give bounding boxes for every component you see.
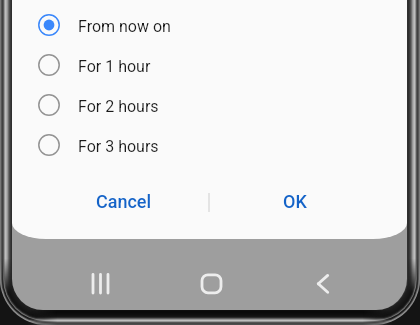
staticText: For 3 hours <box>78 137 159 156</box>
button[interactable]: Cancel <box>38 179 209 223</box>
button[interactable]: Home <box>188 260 236 308</box>
staticText: For 2 hours <box>78 97 159 116</box>
button[interactable]: For 3 hours <box>12 125 407 165</box>
button[interactable]: Recent apps <box>77 260 125 308</box>
staticText: OK <box>283 191 307 212</box>
button[interactable]: From now on <box>12 5 407 45</box>
staticText: From now on <box>78 17 171 36</box>
button[interactable]: For 1 hour <box>12 45 407 85</box>
staticText: Cancel <box>96 191 152 212</box>
button[interactable]: OK <box>209 179 381 223</box>
button[interactable]: Back <box>299 260 347 308</box>
staticText: For 1 hour <box>78 57 151 76</box>
button[interactable]: For 2 hours <box>12 85 407 125</box>
